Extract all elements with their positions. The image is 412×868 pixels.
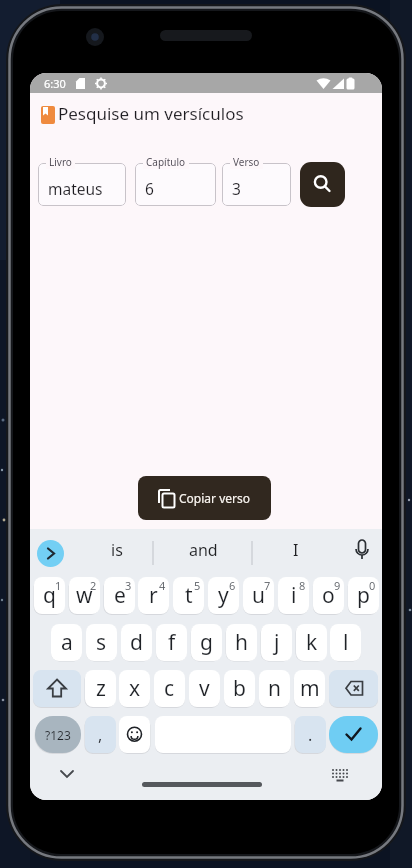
staticText: ?123 [45,727,71,743]
staticText: 3 [232,178,241,199]
button[interactable]: is [92,536,142,564]
staticText: 6 [145,178,154,199]
staticText: u [252,581,265,610]
button[interactable]: j [261,624,292,661]
button[interactable]: b [224,670,255,707]
button[interactable]: t [173,577,204,614]
button[interactable]: s [86,624,117,661]
staticText: b [233,674,246,703]
staticText: s [96,628,107,657]
staticText: y [218,581,229,610]
staticText: c [164,674,175,703]
button[interactable] [329,670,378,707]
staticText: Copiar verso [179,490,250,506]
button[interactable]: , [85,716,116,753]
staticText: g [200,628,213,657]
staticText: Verso [233,155,260,169]
button[interactable] [119,716,150,753]
button[interactable]: r [138,577,169,614]
staticText: 1 [55,578,62,593]
staticText: Livro [49,155,72,169]
staticText: 6:30 [44,76,66,91]
staticText: . [308,724,313,746]
button[interactable]: n [259,670,290,707]
button[interactable]: v [189,670,220,707]
staticText: 2 [90,578,97,593]
staticText: l [343,628,349,657]
button[interactable] [222,163,291,206]
staticText: r [149,581,158,610]
button[interactable]: x [119,670,150,707]
staticText: e [114,581,126,610]
button[interactable] [135,163,216,206]
button[interactable] [33,670,81,707]
staticText: , [98,724,103,746]
staticText: a [61,628,73,657]
staticText: Capítulo [146,155,186,169]
button[interactable]: a [51,624,82,661]
button[interactable]: u [243,577,274,614]
staticText: o [322,581,335,610]
button[interactable]: h [226,624,257,661]
staticText: 5 [194,578,201,593]
button[interactable]: o [313,577,344,614]
staticText: 4 [159,578,166,593]
staticText: z [96,674,106,703]
staticText: I [293,539,299,561]
staticText: 0 [369,578,376,593]
button[interactable]: z [85,670,116,707]
button[interactable] [37,540,64,567]
button[interactable]: w [69,577,100,614]
staticText: k [306,628,318,657]
staticText: p [357,581,370,610]
staticText: d [130,628,143,657]
staticText: t [185,581,193,610]
staticText: mateus [48,178,103,199]
staticText: x [129,674,141,703]
staticText: and [189,539,218,561]
button[interactable]: p [348,577,379,614]
staticText: j [274,628,280,657]
button[interactable]: d [121,624,152,661]
button[interactable]: l [330,624,361,661]
staticText: i [291,581,297,610]
button[interactable]: g [191,624,222,661]
button[interactable]: i [278,577,309,614]
staticText: 8 [299,578,306,593]
staticText: is [111,539,123,561]
staticText: 6 [229,578,236,593]
button[interactable] [300,162,345,207]
button[interactable] [38,163,126,206]
staticText: 7 [264,578,271,593]
staticText: 3 [125,578,132,593]
button[interactable]: . [295,716,326,753]
staticText: q [43,581,56,610]
staticText: n [268,674,281,703]
staticText: v [199,674,210,703]
button[interactable]: q [34,577,65,614]
staticText: f [168,628,176,657]
button[interactable]: k [296,624,327,661]
button[interactable]: f [156,624,187,661]
button[interactable]: y [208,577,239,614]
button[interactable]: I [271,536,321,564]
staticText: 9 [334,578,341,593]
button[interactable]: e [104,577,135,614]
staticText: Pesquise um versículos [58,102,244,125]
staticText: h [235,628,248,657]
button[interactable] [329,716,378,753]
button[interactable]: and [178,536,228,564]
button[interactable]: c [154,670,185,707]
staticText: w [76,581,93,610]
button[interactable]: Copiar verso [138,476,271,520]
staticText: m [300,674,320,703]
button[interactable]: m [294,670,325,707]
button[interactable]: ?123 [35,716,81,753]
